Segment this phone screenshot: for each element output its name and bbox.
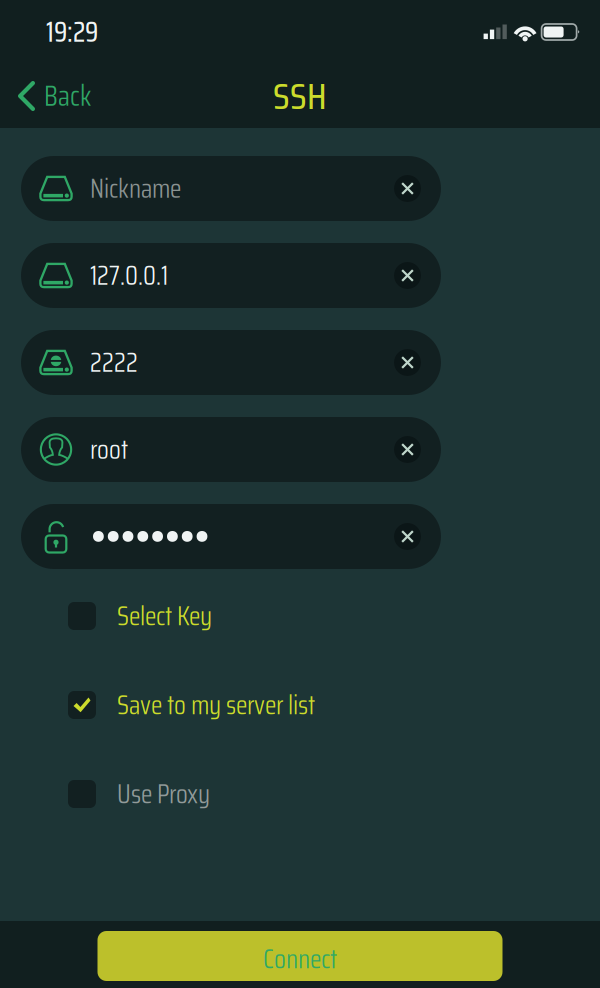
button[interactable]: Clear xyxy=(394,349,421,376)
staticText: Select Key xyxy=(117,595,212,637)
staticText: Save to my server list xyxy=(117,684,315,726)
button[interactable]: Connect xyxy=(97,931,502,981)
button[interactable]: Clear xyxy=(394,523,421,550)
staticText: 19:29 xyxy=(46,10,98,54)
button[interactable]: Save to my server list xyxy=(0,679,600,731)
staticText: root xyxy=(90,428,128,470)
button[interactable]: Select Key xyxy=(0,590,600,642)
button[interactable]: Clear xyxy=(394,175,421,202)
button[interactable]: Clear xyxy=(394,262,421,289)
staticText: 127.0.0.1 xyxy=(90,254,168,296)
staticText: Connect xyxy=(263,938,337,980)
staticText: Use Proxy xyxy=(117,773,210,815)
staticText: SSH xyxy=(273,67,327,125)
button[interactable]: Clear xyxy=(394,436,421,463)
staticText: Back xyxy=(44,74,91,118)
button[interactable]: Back xyxy=(0,64,101,128)
staticText: 2222 xyxy=(90,341,138,383)
staticText: Nickname xyxy=(90,167,181,209)
button[interactable]: Use Proxy xyxy=(0,768,600,820)
